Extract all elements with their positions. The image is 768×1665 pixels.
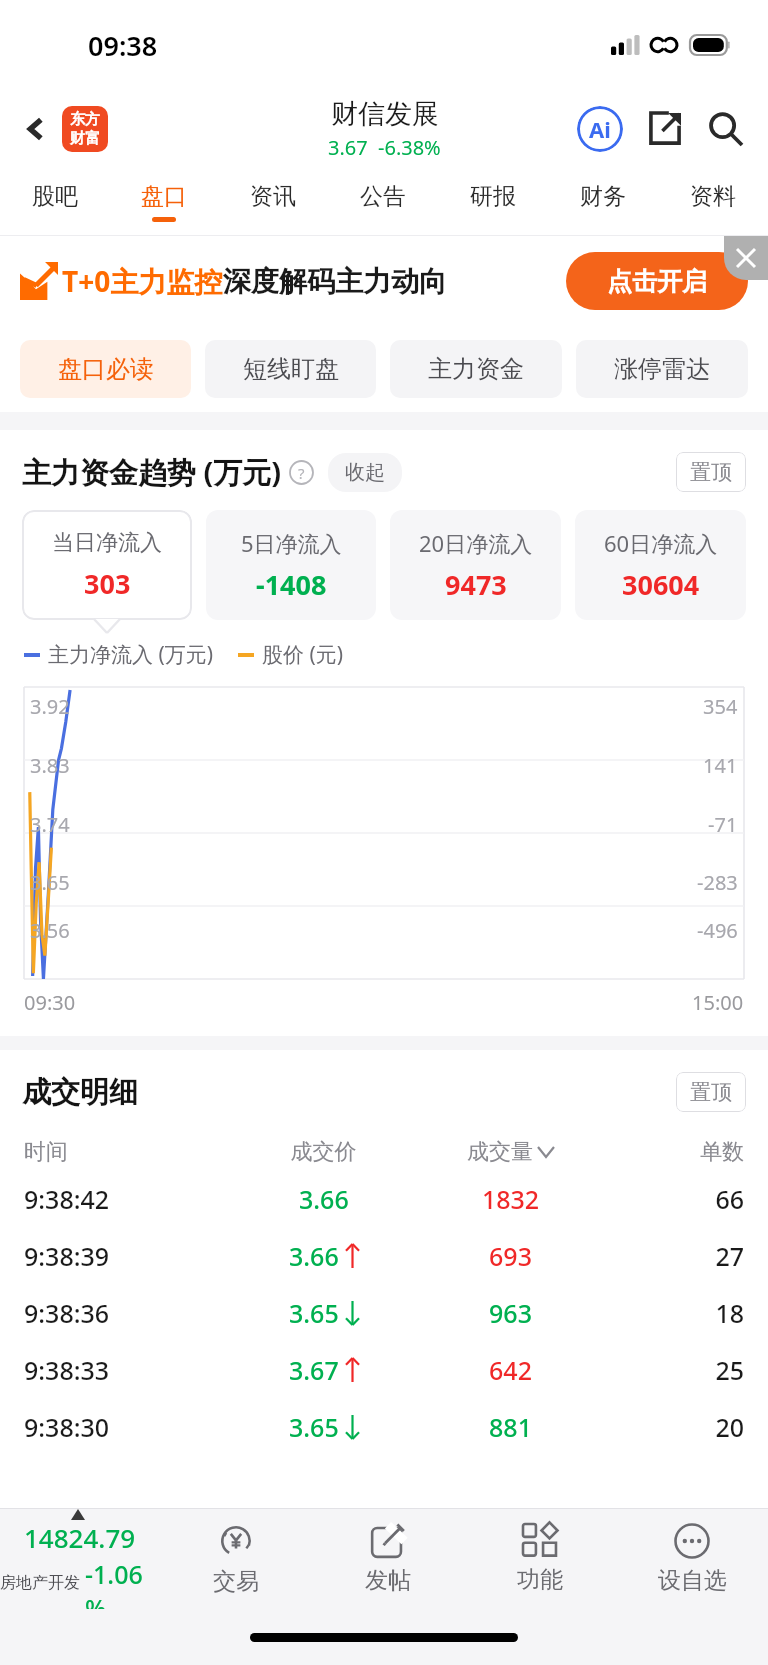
staticText: 置顶 [690, 1079, 732, 1105]
staticText: 3.67 [289, 1353, 339, 1387]
staticText: 研报 [470, 182, 516, 211]
button[interactable]: 14824.79 [0, 1509, 160, 1609]
button[interactable]: Help [289, 460, 314, 485]
staticText: ? [298, 463, 305, 483]
staticText: 642 [417, 1353, 604, 1387]
staticText: 27 [604, 1239, 744, 1273]
staticText: 成交价 [230, 1138, 417, 1166]
staticText: Ai [589, 114, 611, 144]
staticText: 60日净流入 [604, 528, 718, 558]
button[interactable]: 9:38:33 [0, 1341, 768, 1398]
staticText: 09:30 [24, 989, 76, 1016]
staticText: 3.74 [30, 811, 70, 838]
button[interactable]: Share [640, 104, 690, 154]
button[interactable]: 资讯 [218, 168, 328, 236]
staticText: -283 [697, 869, 738, 896]
button[interactable]: 发帖 [312, 1509, 464, 1609]
staticText: 18 [604, 1296, 744, 1330]
button[interactable]: 设自选 [616, 1509, 768, 1609]
staticText: 30604 [622, 566, 700, 603]
staticText: 3.65 [289, 1410, 339, 1444]
button[interactable]: 9:38:39 [0, 1227, 768, 1284]
button[interactable]: 公告 [328, 168, 438, 236]
staticText: 9:38:39 [24, 1239, 230, 1273]
staticText: 963 [417, 1296, 604, 1330]
staticText: 成交量 [467, 1138, 533, 1166]
button[interactable]: 60日净流入 [575, 510, 746, 620]
button[interactable]: 置顶 [676, 1072, 746, 1112]
button[interactable]: 交易 [160, 1509, 312, 1609]
staticText: 财富 [70, 129, 100, 148]
staticText: 股价 (元) [262, 640, 344, 669]
staticText: 当日净流入 [52, 529, 162, 557]
button[interactable]: 点击开启 [566, 252, 748, 310]
staticText: 单数 [604, 1138, 744, 1166]
button[interactable]: 短线盯盘 [205, 340, 376, 398]
staticText: 交易 [213, 1567, 259, 1596]
staticText: 20日净流入 [419, 528, 533, 558]
staticText: 短线盯盘 [243, 354, 339, 384]
staticText: -6.38% [378, 134, 441, 161]
staticText: 3.83 [30, 752, 70, 779]
button[interactable]: 20日净流入 [390, 510, 561, 620]
button[interactable]: 资料 [658, 168, 768, 236]
button[interactable]: Back [14, 107, 58, 151]
staticText: 09:38 [88, 27, 158, 64]
staticText: 1832 [417, 1182, 604, 1216]
button[interactable]: 9:38:36 [0, 1284, 768, 1341]
staticText: 9:38:42 [24, 1182, 230, 1216]
staticText: -1408 [256, 566, 327, 603]
staticText: 资料 [690, 182, 736, 211]
staticText: 时间 [24, 1138, 230, 1166]
staticText: 财务 [580, 182, 626, 211]
button[interactable]: 东方财富 [62, 106, 108, 152]
staticText: 66 [604, 1182, 744, 1216]
staticText: 资讯 [250, 182, 296, 211]
button[interactable]: 9:38:30 [0, 1398, 768, 1455]
button[interactable]: 财务 [548, 168, 658, 236]
staticText: 141 [703, 752, 738, 779]
staticText: 主力净流入 (万元) [48, 640, 214, 669]
button[interactable]: 9:38:42 [0, 1170, 768, 1227]
button[interactable]: AI [574, 103, 626, 155]
staticText: 财信发展 [331, 97, 439, 131]
button[interactable]: 股吧 [0, 168, 109, 236]
staticText: 25 [604, 1353, 744, 1387]
staticText: 354 [703, 693, 738, 720]
staticText: 收起 [345, 460, 385, 485]
button[interactable]: 盘口必读 [20, 340, 191, 398]
button[interactable]: 涨停雷达 [576, 340, 748, 398]
button[interactable]: 盘口 [109, 168, 218, 236]
staticText: 主力资金趋势 (万元) [22, 452, 282, 492]
staticText: 3.92 [30, 693, 70, 720]
staticText: 3.65 [289, 1296, 339, 1330]
staticText: 3.66 [299, 1182, 349, 1216]
staticText: 9:38:30 [24, 1410, 230, 1444]
staticText: 盘口必读 [58, 354, 154, 384]
staticText: 设自选 [658, 1566, 727, 1595]
staticText: -1.06% [85, 1557, 160, 1609]
button[interactable]: 置顶 [676, 452, 746, 492]
staticText: 功能 [517, 1565, 563, 1594]
staticText: 881 [417, 1410, 604, 1444]
staticText: -71 [708, 811, 738, 838]
staticText: 3.65 [30, 869, 70, 896]
button[interactable]: 主力资金 [390, 340, 562, 398]
staticText: 发帖 [365, 1566, 411, 1595]
staticText: 涨停雷达 [614, 354, 710, 384]
button[interactable]: Close [724, 236, 768, 280]
button[interactable]: 收起 [328, 453, 402, 492]
staticText: 14824.79 [24, 1520, 136, 1555]
staticText: 房地产开发 [0, 1573, 80, 1593]
button[interactable]: 研报 [438, 168, 548, 236]
staticText: 693 [417, 1239, 604, 1273]
staticText: 9:38:33 [24, 1353, 230, 1387]
button[interactable]: 功能 [464, 1509, 616, 1609]
staticText: 3.66 [289, 1239, 339, 1273]
button[interactable]: Search [700, 103, 752, 155]
staticText: 盘口 [141, 182, 187, 211]
button[interactable]: 5日净流入 [206, 510, 376, 620]
staticText: 股吧 [32, 182, 78, 211]
staticText: 3.67 [328, 134, 368, 161]
button[interactable]: 当日净流入 [22, 510, 192, 620]
